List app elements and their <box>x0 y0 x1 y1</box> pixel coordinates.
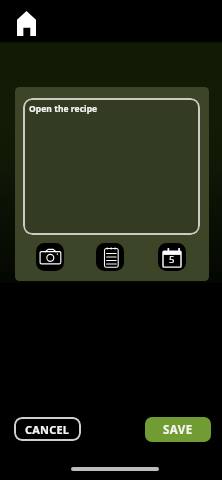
button[interactable]: Calendar <box>158 243 186 271</box>
button[interactable]: Notes <box>96 243 124 271</box>
button[interactable]: CANCEL <box>14 417 81 441</box>
staticText: CANCEL <box>25 422 70 437</box>
button[interactable]: Open the recipe <box>23 98 200 235</box>
button[interactable]: SAVE <box>145 417 211 442</box>
staticText: SAVE <box>163 422 193 438</box>
staticText: 5 <box>169 253 175 266</box>
button[interactable]: Home <box>7 4 45 42</box>
button[interactable]: Take photo <box>36 243 64 271</box>
staticText: Open the recipe <box>29 103 98 115</box>
